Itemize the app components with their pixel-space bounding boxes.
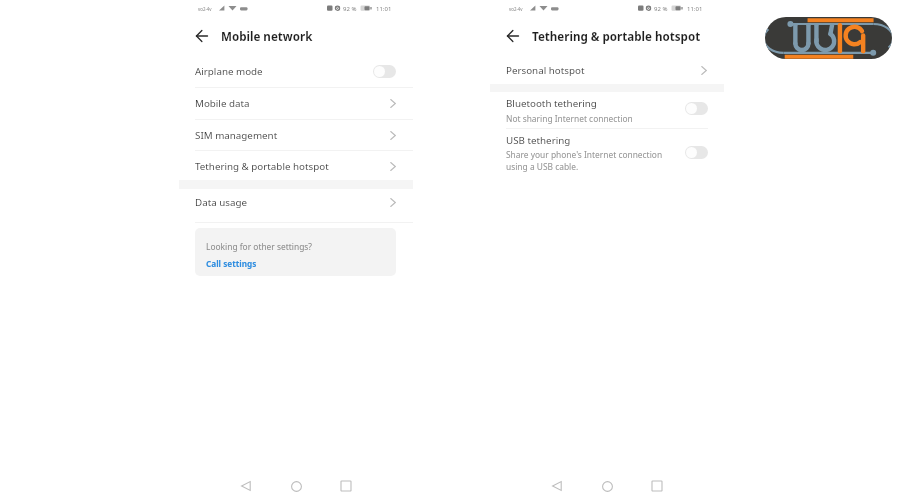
staticText: Data usage	[195, 196, 248, 209]
button[interactable]: Back	[545, 474, 569, 498]
button[interactable]: Tethering & portable hotspot	[179, 151, 413, 180]
staticText: Tethering & portable hotspot	[195, 160, 329, 173]
staticText: using a USB cable.	[506, 161, 579, 172]
staticText: Looking for other settings?	[206, 241, 312, 252]
staticText: Bluetooth tethering	[506, 97, 597, 110]
staticText: Mobile data	[195, 97, 250, 110]
button[interactable]: Airplane mode	[179, 56, 413, 87]
button[interactable]: Bluetooth tethering	[685, 102, 708, 115]
button[interactable]: Mobile data	[179, 88, 413, 119]
staticText: Share your phone's Internet connection	[506, 149, 663, 160]
button[interactable]: Bluetooth tethering	[490, 93, 724, 127]
button[interactable]: USB tethering	[490, 129, 724, 174]
button[interactable]: SIM management	[179, 120, 413, 150]
staticText: Tethering & portable hotspot	[532, 29, 701, 45]
button[interactable]: Navigate up	[499, 22, 527, 50]
button[interactable]: Personal hotspot	[490, 56, 724, 83]
staticText: 11:01	[376, 5, 392, 13]
button[interactable]: Data usage	[179, 189, 413, 219]
button[interactable]: Call settings	[205, 255, 268, 269]
staticText: Not sharing Internet connection	[506, 113, 633, 124]
staticText: Call settings	[206, 258, 257, 269]
button[interactable]: Back	[234, 474, 258, 498]
staticText: vo2-4v	[198, 6, 212, 12]
button[interactable]: Navigate up	[188, 22, 216, 50]
button[interactable]: Recent apps	[334, 474, 358, 498]
staticText: Airplane mode	[195, 65, 263, 78]
staticText: 11:01	[687, 5, 703, 13]
button[interactable]: Home	[595, 474, 619, 498]
staticText: Mobile network	[221, 29, 313, 45]
staticText: vo2-4v	[509, 6, 523, 12]
staticText: 92 %	[654, 5, 668, 13]
button[interactable]: USB tethering	[685, 146, 708, 159]
staticText: USB tethering	[506, 134, 571, 147]
button[interactable]: Home	[284, 474, 308, 498]
button[interactable]: Recent apps	[645, 474, 669, 498]
button[interactable]: UK19 logo	[765, 17, 892, 59]
button[interactable]: Airplane mode	[373, 65, 396, 78]
staticText: 92 %	[343, 5, 357, 13]
staticText: Personal hotspot	[506, 64, 585, 77]
staticText: SIM management	[195, 129, 278, 142]
